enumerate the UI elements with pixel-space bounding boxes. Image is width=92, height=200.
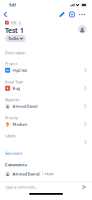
button[interactable]: To Do xyxy=(5,35,26,42)
staticText: Project xyxy=(5,61,17,66)
staticText: Medium xyxy=(12,122,27,127)
button[interactable]: Back xyxy=(0,9,11,20)
staticText: Test 1 xyxy=(5,26,24,35)
staticText: 1 day ago xyxy=(42,172,55,176)
staticText: Type a comment... xyxy=(5,184,37,190)
staticText: Ahmed Daniel xyxy=(12,104,37,109)
staticText: Reporter xyxy=(5,97,20,102)
button[interactable]: Watch xyxy=(67,9,77,20)
staticText: HIC-2 xyxy=(10,20,20,25)
staticText: HipChat xyxy=(12,68,26,73)
staticText: 9:41 xyxy=(9,2,16,8)
staticText: Priority xyxy=(5,115,18,120)
button[interactable]: Issue Type xyxy=(0,76,92,94)
button[interactable]: Type a comment... xyxy=(0,182,92,192)
button[interactable]: See more xyxy=(0,149,27,157)
button[interactable]: Project xyxy=(0,58,92,76)
button[interactable]: Edit xyxy=(57,9,67,20)
staticText: To Do xyxy=(8,36,18,41)
staticText: Labels xyxy=(5,133,16,138)
button[interactable]: Labels xyxy=(0,130,92,148)
button[interactable]: Reporter xyxy=(0,94,92,112)
button[interactable]: Assignee xyxy=(78,25,86,33)
button[interactable]: Priority xyxy=(0,112,92,130)
staticText: Bug xyxy=(12,86,19,91)
button[interactable]: More options xyxy=(77,9,87,20)
staticText: Issue Type xyxy=(5,79,23,84)
staticText: Ahmed Daniel xyxy=(12,171,39,177)
staticText: Comments xyxy=(5,162,27,167)
staticText: See more xyxy=(5,150,22,156)
staticText: Description xyxy=(5,50,25,55)
